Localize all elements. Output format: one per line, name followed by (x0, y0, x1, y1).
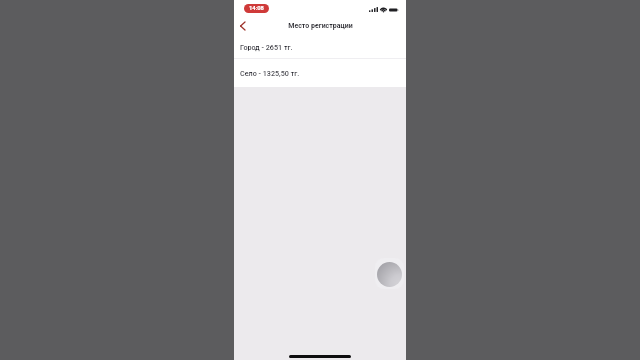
button[interactable]: Add (377, 262, 402, 287)
staticText: Село - 1325,50 тг. (240, 69, 300, 77)
button[interactable]: Back (234, 17, 251, 35)
button[interactable]: Село - 1325,50 тг. (234, 59, 406, 87)
staticText: Город - 2651 тг. (240, 43, 293, 51)
button[interactable]: Город - 2651 тг. (234, 35, 406, 58)
staticText: 14:08 (249, 5, 264, 12)
staticText: Место регистрации (288, 22, 353, 30)
